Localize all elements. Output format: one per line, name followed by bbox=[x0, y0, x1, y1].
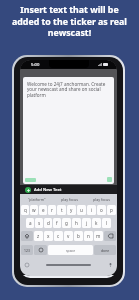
staticText: space bbox=[66, 248, 76, 253]
button[interactable]: play focus bbox=[85, 194, 117, 205]
button[interactable]: play focus bbox=[53, 194, 85, 205]
staticText: g bbox=[65, 220, 68, 226]
button[interactable]: k bbox=[92, 218, 101, 228]
staticText: done bbox=[101, 248, 110, 253]
staticText: q bbox=[24, 207, 27, 213]
staticText: b bbox=[77, 233, 80, 239]
button[interactable]: Shift bbox=[21, 231, 33, 241]
button[interactable]: w bbox=[30, 205, 38, 215]
button[interactable]: d bbox=[44, 218, 52, 228]
staticText: d bbox=[47, 220, 50, 226]
button[interactable]: t bbox=[57, 205, 66, 215]
button[interactable]: b bbox=[74, 231, 83, 241]
button[interactable]: g bbox=[62, 218, 71, 228]
button[interactable]: Emoji bbox=[34, 245, 47, 255]
button[interactable]: f bbox=[53, 218, 61, 228]
staticText: n bbox=[87, 233, 90, 239]
staticText: "platform" bbox=[28, 197, 46, 202]
staticText: u bbox=[80, 207, 83, 213]
staticText: m bbox=[96, 233, 101, 239]
staticText: z bbox=[37, 233, 40, 239]
button[interactable]: v bbox=[64, 231, 73, 241]
button[interactable]: p bbox=[107, 205, 116, 215]
staticText: x bbox=[47, 233, 50, 239]
staticText: w bbox=[32, 207, 36, 213]
button[interactable]: Add New Text bbox=[20, 185, 117, 194]
button[interactable]: space bbox=[48, 245, 93, 255]
button[interactable]: l bbox=[102, 218, 111, 228]
button[interactable]: r bbox=[48, 205, 56, 215]
staticText: r bbox=[51, 207, 53, 213]
button[interactable]: i bbox=[87, 205, 96, 215]
staticText: c bbox=[57, 233, 60, 239]
button[interactable]: e bbox=[39, 205, 47, 215]
button[interactable]: c bbox=[54, 231, 63, 241]
button[interactable]: 123 bbox=[21, 245, 33, 255]
button[interactable]: o bbox=[97, 205, 106, 215]
other: Voice input bbox=[109, 263, 112, 267]
staticText: o bbox=[100, 207, 103, 213]
staticText: play focus bbox=[93, 197, 110, 202]
button[interactable]: n bbox=[84, 231, 93, 241]
other: Keyboard settings bbox=[25, 263, 29, 267]
button[interactable]: x bbox=[44, 231, 53, 241]
staticText: play focus bbox=[61, 197, 78, 202]
staticText: k bbox=[95, 220, 98, 226]
staticText: h bbox=[75, 220, 78, 226]
button[interactable]: a bbox=[26, 218, 34, 228]
staticText: e bbox=[42, 207, 45, 213]
staticText: s bbox=[38, 220, 41, 226]
staticText: Add New Text bbox=[34, 187, 62, 193]
button[interactable]: Backspace bbox=[104, 231, 116, 241]
button[interactable]: "platform" bbox=[20, 194, 53, 205]
staticText: p bbox=[110, 207, 113, 213]
staticText: t bbox=[61, 207, 63, 213]
button[interactable]: y bbox=[67, 205, 76, 215]
button[interactable]: j bbox=[82, 218, 91, 228]
button[interactable]: z bbox=[34, 231, 43, 241]
staticText: 123 bbox=[24, 248, 30, 253]
staticText: Welcome to 24j7 anchorman. Create your n… bbox=[27, 81, 107, 99]
staticText: y bbox=[70, 207, 73, 213]
staticText: a bbox=[29, 220, 32, 226]
button[interactable]: u bbox=[77, 205, 86, 215]
button[interactable]: h bbox=[72, 218, 81, 228]
staticText: l bbox=[106, 220, 108, 226]
staticText: f bbox=[56, 220, 58, 226]
staticText: i bbox=[91, 207, 93, 213]
button[interactable]: m bbox=[94, 231, 103, 241]
button[interactable]: q bbox=[21, 205, 29, 215]
staticText: 5:00 bbox=[31, 62, 40, 68]
staticText: v bbox=[67, 233, 70, 239]
staticText: j bbox=[86, 220, 88, 226]
staticText: Insert text that will be added to the ti… bbox=[6, 4, 133, 38]
button[interactable]: s bbox=[35, 218, 43, 228]
button[interactable]: done bbox=[94, 245, 116, 255]
